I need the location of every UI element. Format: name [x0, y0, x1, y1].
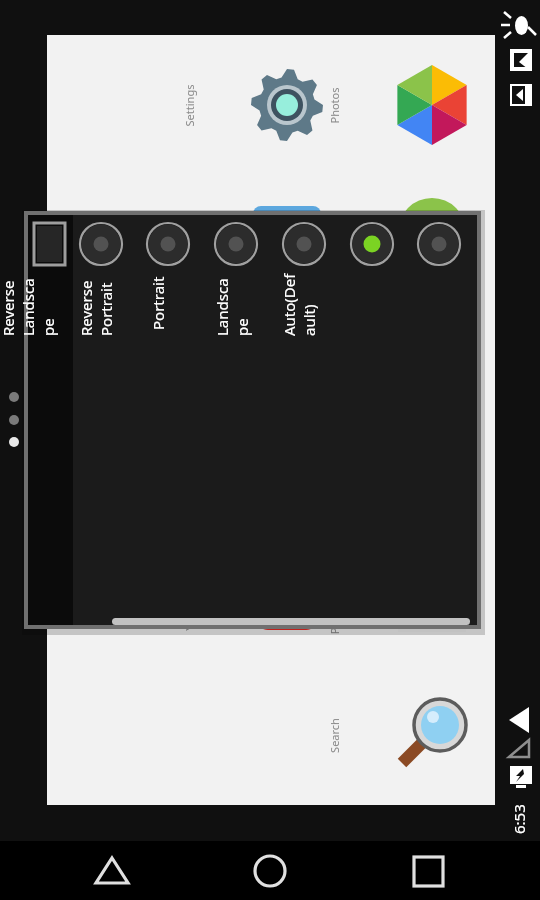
button[interactable]: Home	[238, 841, 302, 900]
staticText: YouTube	[182, 586, 197, 631]
button[interactable]: Play Movies	[372, 298, 492, 418]
staticText: Landscape	[212, 270, 252, 336]
button[interactable]: Reverse Portrait	[203, 216, 269, 616]
staticText: Auto(Default)	[279, 270, 319, 336]
staticText: Play Games	[319, 202, 349, 262]
button[interactable]: YouTube	[227, 548, 347, 668]
staticText: SuperSU	[182, 210, 197, 255]
button[interactable]: Portrait	[271, 216, 337, 616]
staticText: Settings	[181, 84, 196, 126]
staticText: Reverse Landscape	[0, 270, 58, 336]
staticText: Photos	[327, 87, 342, 124]
staticText: 6:53	[509, 804, 529, 834]
button[interactable]: Auto Start on Boot	[28, 215, 73, 625]
button[interactable]: Photos	[372, 45, 492, 165]
staticText: Play Store	[326, 582, 341, 634]
button[interactable]: Landscape	[339, 216, 405, 616]
staticText: Search	[327, 718, 342, 753]
button[interactable]: Stop App(Default state will be restored)	[68, 216, 134, 616]
button[interactable]: SuperSU	[227, 172, 347, 292]
button[interactable]: Play Store	[372, 548, 492, 668]
button[interactable]: Settings	[227, 45, 347, 165]
button[interactable]: Play Games	[372, 172, 492, 292]
button[interactable]: Reverse Landscape	[135, 216, 201, 616]
button[interactable]: Back	[80, 841, 144, 900]
button[interactable]: Play Music	[372, 423, 492, 543]
button[interactable]: Sound Recorder	[227, 298, 347, 418]
button[interactable]: Search	[372, 675, 492, 795]
staticText: Reverse Portrait	[76, 270, 116, 336]
staticText: Portrait	[148, 276, 168, 330]
button[interactable]: Auto(Default)	[406, 216, 472, 616]
button[interactable]: Recent apps	[396, 841, 460, 900]
